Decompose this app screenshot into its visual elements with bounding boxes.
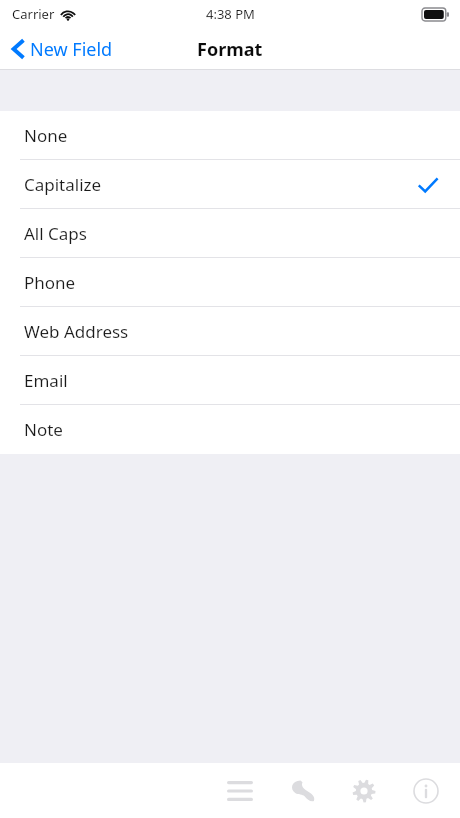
button[interactable]: Capitalize [0, 160, 460, 209]
staticText: Web Address [24, 320, 129, 343]
staticText: Note [24, 418, 63, 441]
staticText: New Field [30, 37, 113, 62]
button[interactable]: None [0, 111, 460, 160]
button[interactable]: Phone [0, 258, 460, 307]
staticText: All Caps [24, 222, 87, 245]
button[interactable]: All Caps [0, 209, 460, 258]
staticText: 4:38 PM [206, 5, 255, 23]
button[interactable]: Settings [342, 769, 386, 813]
staticText: Capitalize [24, 173, 102, 196]
button[interactable]: New Field [0, 28, 123, 70]
staticText: Phone [24, 271, 76, 294]
button[interactable]: Email [0, 356, 460, 405]
staticText: Email [24, 369, 68, 392]
button[interactable]: Info [404, 769, 448, 813]
button[interactable]: Note [0, 405, 460, 454]
staticText: Carrier [12, 5, 55, 23]
staticText: None [24, 124, 68, 147]
button[interactable]: Web Address [0, 307, 460, 356]
button[interactable]: Menu [218, 769, 262, 813]
staticText: Format [197, 37, 263, 62]
button[interactable]: Tools [280, 769, 324, 813]
